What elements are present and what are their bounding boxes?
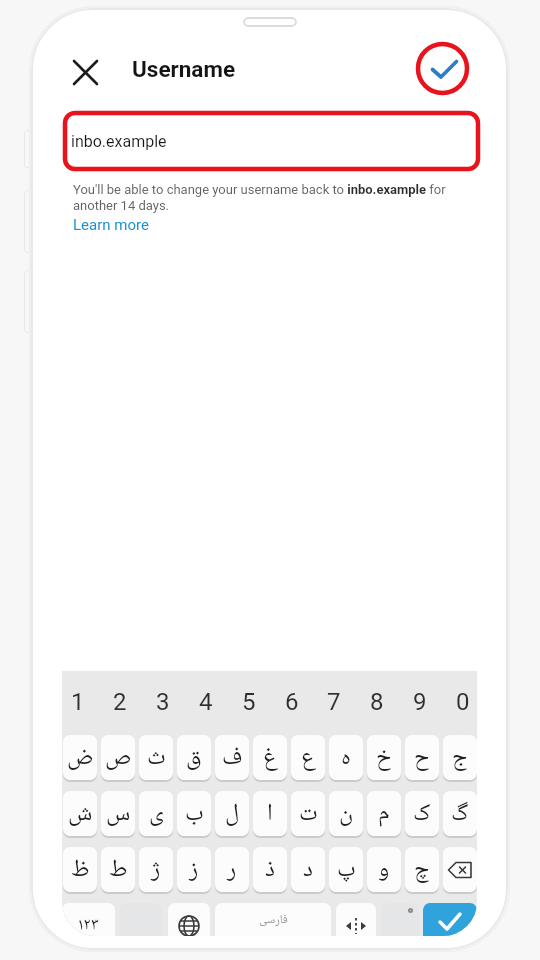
staticText: ژ xyxy=(151,853,161,886)
staticText: ج xyxy=(452,741,468,774)
button[interactable]: 7 xyxy=(314,685,354,719)
staticText: 2 xyxy=(113,688,127,716)
button[interactable] xyxy=(66,53,105,92)
button[interactable]: ب xyxy=(177,791,211,836)
staticText: ق xyxy=(186,741,202,774)
staticText: Learn more xyxy=(73,216,149,234)
button[interactable] xyxy=(424,52,462,90)
staticText: 5 xyxy=(242,688,256,716)
staticText: 7 xyxy=(327,688,341,716)
staticText: ع xyxy=(301,741,316,774)
staticText: ب xyxy=(185,797,204,830)
button[interactable]: خ xyxy=(367,735,401,780)
button[interactable]: 1 xyxy=(62,685,98,719)
staticText: ف xyxy=(222,741,243,774)
staticText: ط xyxy=(109,853,128,886)
staticText: ح xyxy=(414,741,430,774)
button[interactable] xyxy=(381,903,419,936)
staticText: 8 xyxy=(370,688,384,716)
staticText: ز xyxy=(189,853,199,886)
staticText: د xyxy=(303,853,313,886)
staticText: Username xyxy=(132,56,236,82)
button[interactable]: ی xyxy=(139,791,173,836)
button[interactable]: ن xyxy=(329,791,363,836)
button[interactable]: 5 xyxy=(229,685,269,719)
button[interactable]: 8 xyxy=(357,685,397,719)
staticText: ی xyxy=(149,797,164,830)
button[interactable]: غ xyxy=(253,735,287,780)
staticText: گ xyxy=(451,797,469,830)
staticText: خ xyxy=(376,741,392,774)
staticText: و xyxy=(378,853,390,886)
button[interactable]: 2 xyxy=(100,685,140,719)
button[interactable]: ژ xyxy=(139,847,173,892)
staticText: another 14 days. xyxy=(73,198,170,213)
button[interactable]: 4 xyxy=(186,685,226,719)
staticText: پ xyxy=(337,853,356,886)
staticText: ه xyxy=(341,741,351,774)
staticText: ا xyxy=(267,797,273,830)
button[interactable]: ت xyxy=(291,791,325,836)
staticText: ظ xyxy=(71,853,90,886)
staticText: 6 xyxy=(285,688,299,716)
button[interactable]: ح xyxy=(405,735,439,780)
button[interactable]: ظ xyxy=(63,847,97,892)
button[interactable]: ط xyxy=(101,847,135,892)
button[interactable]: 3 xyxy=(143,685,183,719)
button[interactable]: گ xyxy=(443,791,477,836)
staticText: س xyxy=(106,797,131,830)
button[interactable]: 0 xyxy=(443,685,477,719)
button[interactable]: ک xyxy=(405,791,439,836)
button[interactable]: 6 xyxy=(272,685,312,719)
button[interactable]: د xyxy=(291,847,325,892)
button[interactable]: ش xyxy=(63,791,97,836)
staticText: 3 xyxy=(156,688,170,716)
button[interactable]: ذ xyxy=(253,847,287,892)
button[interactable]: ر xyxy=(215,847,249,892)
button[interactable]: ث xyxy=(139,735,173,780)
button[interactable]: س xyxy=(101,791,135,836)
staticText: ۱۲۳ xyxy=(78,914,99,936)
button[interactable]: و xyxy=(367,847,401,892)
button[interactable]: چ xyxy=(405,847,439,892)
button[interactable] xyxy=(336,903,376,936)
staticText: ص xyxy=(105,741,132,774)
button[interactable]: ۱۲۳ xyxy=(62,903,115,936)
button[interactable]: ق xyxy=(177,735,211,780)
staticText: 9 xyxy=(413,688,427,716)
staticText: ل xyxy=(225,797,240,830)
staticText: ث xyxy=(147,741,166,774)
button[interactable]: Learn more xyxy=(73,216,149,234)
button[interactable] xyxy=(168,903,210,936)
button[interactable]: م xyxy=(367,791,401,836)
button[interactable] xyxy=(423,903,477,936)
button[interactable]: ص xyxy=(101,735,135,780)
button[interactable]: ه xyxy=(329,735,363,780)
staticText: ذ xyxy=(265,853,275,886)
button[interactable]: 9 xyxy=(400,685,440,719)
button[interactable]: ض xyxy=(63,735,97,780)
button[interactable] xyxy=(443,847,477,892)
button[interactable]: ج xyxy=(443,735,477,780)
staticText: ن xyxy=(339,797,354,830)
staticText: You'll be able to change your username b… xyxy=(73,182,446,197)
staticText: ش xyxy=(68,797,93,830)
button[interactable]: ع xyxy=(291,735,325,780)
staticText: ک xyxy=(413,797,431,830)
button[interactable]: ف xyxy=(215,735,249,780)
staticText: 4 xyxy=(199,688,213,716)
button[interactable]: inbo.example xyxy=(66,114,477,168)
staticText: ر xyxy=(227,853,237,886)
staticText: چ xyxy=(414,853,430,886)
staticText: غ xyxy=(263,741,278,774)
button[interactable]: پ xyxy=(329,847,363,892)
staticText: م xyxy=(378,797,390,830)
button[interactable]: ل xyxy=(215,791,249,836)
staticText: ض xyxy=(67,741,94,774)
button[interactable]: ز xyxy=(177,847,211,892)
button[interactable]: فارسی xyxy=(215,903,331,936)
staticText: 0 xyxy=(456,688,470,716)
button[interactable]: ا xyxy=(253,791,287,836)
staticText: فارسی xyxy=(259,912,288,928)
